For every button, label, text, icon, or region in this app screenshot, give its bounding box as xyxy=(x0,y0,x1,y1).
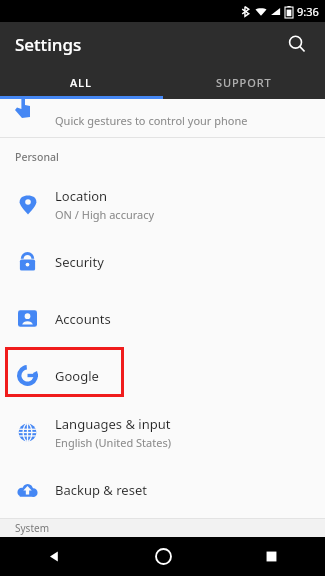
staticText: Languages & input xyxy=(55,415,171,433)
staticText: ON / High accuracy xyxy=(55,207,155,222)
button[interactable]: Quick gestures to control your phone xyxy=(0,99,325,137)
staticText: Backup & reset xyxy=(55,481,147,499)
staticText: System xyxy=(15,521,49,535)
button[interactable]: Back xyxy=(0,537,109,576)
staticText: Location xyxy=(55,187,108,205)
button[interactable]: Home xyxy=(109,537,217,576)
button[interactable]: Google xyxy=(0,347,325,404)
staticText: Quick gestures to control your phone xyxy=(55,113,248,128)
staticText: Google xyxy=(55,367,99,385)
button[interactable]: Languages & input xyxy=(0,404,325,461)
staticText: ALL xyxy=(70,75,92,90)
staticText: English (United States) xyxy=(55,435,171,450)
button[interactable]: Recents xyxy=(217,537,325,576)
staticText: Settings xyxy=(15,33,82,56)
button[interactable]: Backup & reset xyxy=(0,461,325,518)
staticText: Accounts xyxy=(55,310,111,328)
staticText: SUPPORT xyxy=(216,75,272,90)
button[interactable]: SUPPORT xyxy=(162,66,325,99)
button[interactable]: ALL xyxy=(0,66,162,99)
button[interactable]: Security xyxy=(0,233,325,290)
staticText: 9:36 xyxy=(297,4,319,19)
staticText: Security xyxy=(55,253,104,271)
button[interactable]: Location xyxy=(0,176,325,233)
button[interactable]: Accounts xyxy=(0,290,325,347)
staticText: Personal xyxy=(15,150,59,164)
button[interactable]: Search xyxy=(279,26,315,62)
